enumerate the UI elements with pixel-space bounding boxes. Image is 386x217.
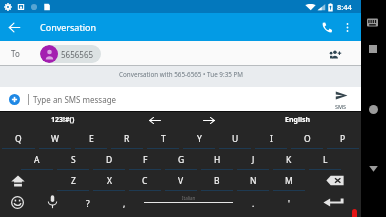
staticText: To: [11, 48, 20, 59]
button[interactable]: D: [91, 149, 127, 170]
staticText: O: [304, 133, 311, 145]
button[interactable]: Back: [366, 161, 380, 175]
button[interactable]: G: [163, 149, 199, 170]
button[interactable]: Attach: [6, 91, 23, 108]
button[interactable]: Backspace: [307, 170, 361, 191]
staticText: X: [107, 175, 112, 187]
button[interactable]: R: [109, 128, 145, 149]
button[interactable]: J: [235, 149, 271, 170]
button[interactable]: .: [235, 191, 271, 217]
staticText: W: [51, 133, 59, 145]
button[interactable]: K: [271, 149, 307, 170]
button[interactable]: Hide keyboard: [365, 15, 379, 29]
staticText: Type an SMS message: [33, 94, 117, 105]
staticText: 123!#(): [51, 115, 75, 125]
button[interactable]: S: [55, 149, 91, 170]
button[interactable]: T: [145, 128, 181, 149]
staticText: E: [89, 133, 94, 145]
button[interactable]: Z: [55, 170, 91, 191]
staticText: G: [178, 154, 185, 166]
staticText: M: [285, 175, 293, 187]
staticText: English: [285, 115, 311, 125]
staticText: H: [214, 154, 221, 166]
button[interactable]: F: [127, 149, 163, 170]
button[interactable]: Y: [181, 128, 217, 149]
button[interactable]: L: [307, 149, 343, 170]
staticText: S: [71, 154, 76, 166]
button[interactable]: A: [19, 149, 55, 170]
button[interactable]: B: [199, 170, 235, 191]
button[interactable]: H: [199, 149, 235, 170]
staticText: A: [34, 154, 40, 166]
button[interactable]: Voice input: [35, 191, 70, 217]
button[interactable]: U: [217, 128, 253, 149]
button[interactable]: O: [289, 128, 325, 149]
staticText: Z: [71, 175, 76, 187]
staticText: Conversation: [40, 21, 96, 33]
staticText: B: [214, 175, 220, 187]
button[interactable]: E: [73, 128, 109, 149]
button[interactable]: N: [235, 170, 271, 191]
staticText: ': [288, 198, 290, 210]
button[interactable]: Emoji: [0, 191, 35, 217]
button[interactable]: Add people: [326, 45, 344, 63]
staticText: 5656565: [61, 49, 94, 60]
button[interactable]: ?: [70, 191, 106, 217]
button[interactable]: English: [285, 115, 311, 125]
button[interactable]: X: [91, 170, 127, 191]
staticText: Y: [197, 133, 202, 145]
staticText: Conversation with 565-6565 • Tue 9:35 PM: [119, 70, 243, 79]
staticText: SMS: [335, 103, 347, 110]
button[interactable]: C: [127, 170, 163, 191]
staticText: L: [323, 154, 328, 166]
button[interactable]: Space: [142, 191, 235, 217]
button[interactable]: Shift: [0, 170, 55, 191]
staticText: Italian: [182, 195, 196, 201]
staticText: V: [178, 175, 184, 187]
staticText: C: [142, 175, 148, 187]
button[interactable]: P: [325, 128, 361, 149]
button[interactable]: Home: [366, 102, 380, 116]
button[interactable]: Navigate up: [5, 18, 24, 37]
button[interactable]: W: [37, 128, 73, 149]
staticText: .: [252, 198, 255, 210]
button[interactable]: 5656565: [40, 45, 101, 63]
button[interactable]: M: [271, 170, 307, 191]
button[interactable]: 123!#(): [51, 115, 75, 125]
staticText: ?: [86, 198, 90, 210]
staticText: F: [143, 154, 148, 166]
button[interactable]: ,: [106, 191, 142, 217]
staticText: J: [252, 154, 255, 166]
staticText: D: [106, 154, 113, 166]
staticText: P: [340, 133, 346, 145]
button[interactable]: Previous: [148, 113, 162, 127]
staticText: K: [286, 154, 292, 166]
button[interactable]: Send SMS: [321, 87, 361, 111]
staticText: ,: [123, 198, 126, 210]
staticText: R: [124, 133, 130, 145]
button[interactable]: Q: [0, 128, 37, 149]
button[interactable]: Call: [315, 16, 337, 38]
button[interactable]: Enter: [307, 191, 361, 217]
button[interactable]: Recent apps: [366, 42, 380, 56]
button[interactable]: Next: [202, 113, 216, 127]
staticText: Q: [15, 133, 22, 145]
staticText: 8:44: [337, 2, 352, 12]
staticText: T: [161, 133, 166, 145]
staticText: N: [250, 175, 257, 187]
button[interactable]: I: [253, 128, 289, 149]
button[interactable]: ': [271, 191, 307, 217]
button[interactable]: More options: [337, 17, 357, 37]
button[interactable]: V: [163, 170, 199, 191]
staticText: I: [270, 133, 273, 145]
staticText: U: [232, 133, 239, 145]
